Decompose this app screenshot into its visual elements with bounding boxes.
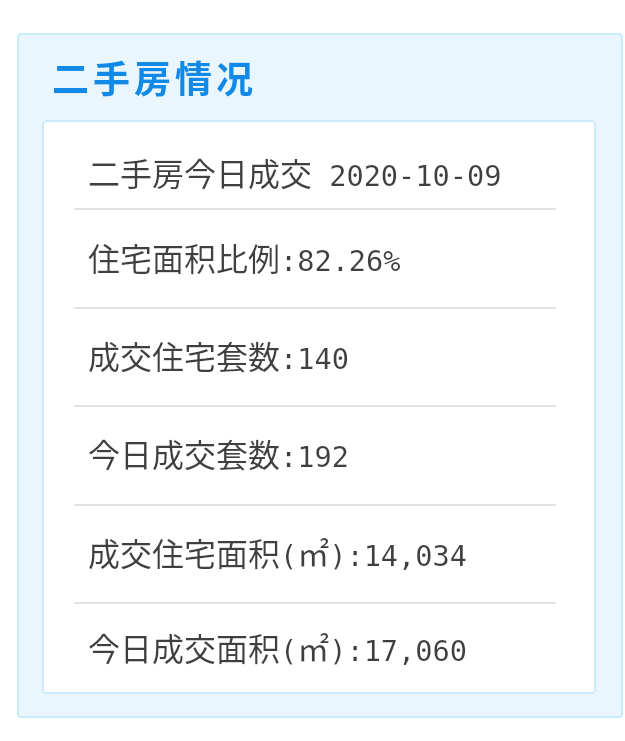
button[interactable]: 二手房今日成交 2020-10-09 [42, 120, 596, 208]
staticText: 今日成交面积(㎡):17,060 [88, 624, 467, 670]
staticText: 二手房今日成交 2020-10-09 [88, 149, 502, 195]
button[interactable]: 今日成交面积(㎡):17,060 [42, 604, 596, 694]
staticText: 成交住宅面积(㎡):14,034 [88, 529, 467, 575]
staticText: 成交住宅套数:140 [88, 332, 349, 378]
staticText: 二手房情况 [52, 50, 257, 104]
staticText: 住宅面积比例:82.26% [88, 234, 401, 280]
button[interactable]: 成交住宅面积(㎡):14,034 [42, 506, 596, 602]
button[interactable]: 住宅面积比例:82.26% [42, 210, 596, 307]
button[interactable]: 今日成交套数:192 [42, 407, 596, 504]
button[interactable]: 成交住宅套数:140 [42, 309, 596, 405]
staticText: 今日成交套数:192 [88, 430, 349, 476]
